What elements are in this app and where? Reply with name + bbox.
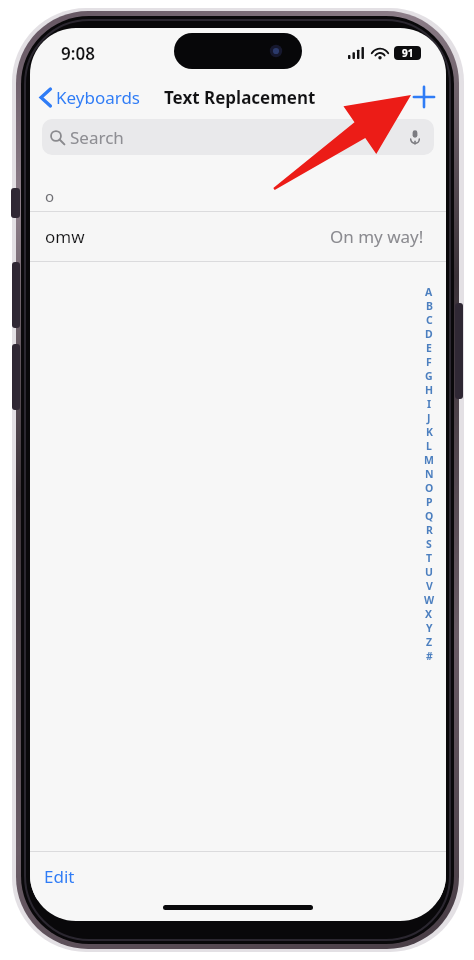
staticText: R (426, 523, 433, 537)
staticText: G (425, 369, 433, 383)
staticText: V (426, 579, 433, 593)
staticText: S (426, 537, 432, 551)
staticText: K (426, 425, 433, 439)
staticText: omw (45, 225, 85, 248)
staticText: N (425, 467, 434, 481)
staticText: F (426, 355, 432, 369)
staticText: M (424, 453, 434, 467)
staticText: H (425, 383, 434, 397)
staticText: U (425, 565, 433, 579)
staticText: Text Replacement (164, 86, 316, 109)
staticText: D (425, 327, 433, 341)
staticText: J (427, 411, 431, 425)
button[interactable]: Search (42, 119, 434, 155)
staticText: I (427, 397, 432, 411)
button[interactable]: Edit (30, 859, 89, 894)
staticText: B (426, 299, 433, 313)
staticText: 91 (402, 46, 414, 60)
staticText: P (426, 495, 433, 509)
staticText: X (425, 607, 433, 621)
staticText: O (425, 481, 434, 495)
staticText: On my way! (330, 225, 424, 248)
staticText: E (426, 341, 432, 355)
staticText: Keyboards (56, 86, 140, 109)
button[interactable]: omw (30, 212, 446, 261)
staticText: Y (426, 621, 433, 635)
staticText: Q (425, 509, 434, 523)
staticText: Edit (44, 865, 75, 888)
staticText: 9:08 (61, 42, 95, 65)
button[interactable]: Alphabet index (421, 285, 437, 663)
staticText: o (45, 186, 55, 206)
staticText: L (426, 439, 432, 453)
button[interactable]: Keyboards (30, 84, 148, 111)
button[interactable]: Add text replacement (402, 75, 446, 119)
staticText: T (426, 551, 433, 565)
button[interactable]: Voice search (404, 126, 426, 148)
staticText: # (426, 649, 433, 663)
staticText: W (424, 593, 435, 607)
staticText: C (426, 313, 433, 327)
staticText: A (425, 285, 433, 299)
staticText: Search (70, 126, 124, 149)
staticText: Z (426, 635, 433, 649)
